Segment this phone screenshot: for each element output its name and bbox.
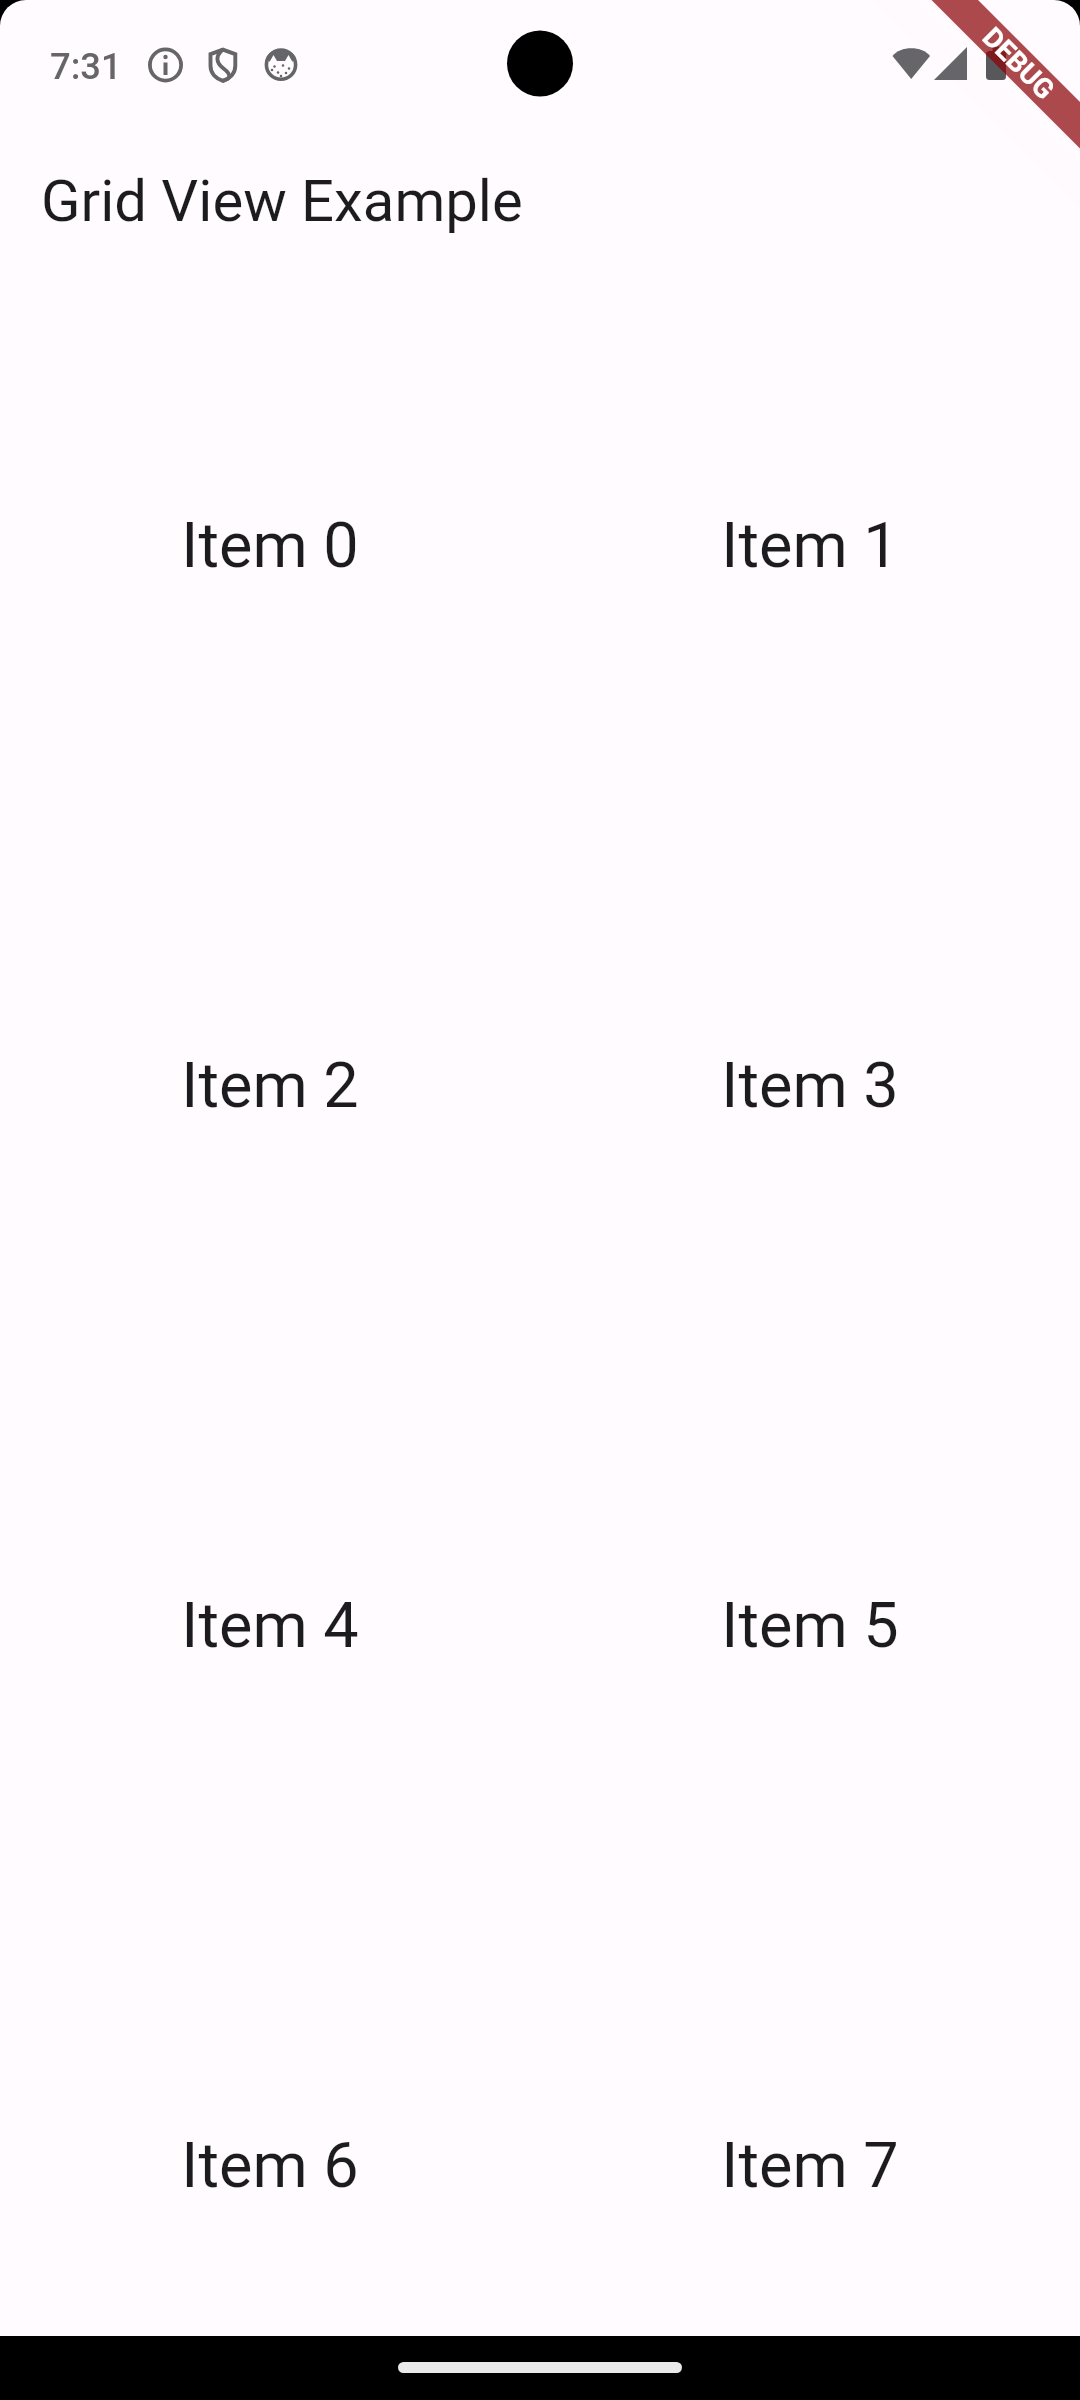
button[interactable]: Item 7 (540, 1896, 1080, 2336)
button[interactable]: Item 3 (540, 816, 1080, 1356)
staticText: Item 2 (181, 1049, 359, 1123)
staticText: Item 4 (181, 1589, 359, 1663)
button[interactable]: Item 6 (0, 1896, 540, 2336)
button[interactable]: Item 4 (0, 1356, 540, 1896)
staticText: Item 1 (721, 509, 899, 583)
button[interactable]: Item 1 (540, 276, 1080, 816)
staticText: Item 6 (181, 2129, 359, 2203)
staticText: Item 3 (721, 1049, 899, 1123)
staticText: DEBUG (977, 21, 1061, 105)
staticText: Item 7 (721, 2129, 899, 2203)
staticText: 7:31 (50, 45, 122, 88)
staticText: Grid View Example (41, 167, 523, 235)
staticText: Item 5 (721, 1589, 899, 1663)
staticText: Item 0 (181, 509, 359, 583)
button[interactable]: Home (398, 2362, 682, 2373)
button[interactable]: Item 2 (0, 816, 540, 1356)
button[interactable]: Item 0 (0, 276, 540, 816)
button[interactable]: Item 5 (540, 1356, 1080, 1896)
